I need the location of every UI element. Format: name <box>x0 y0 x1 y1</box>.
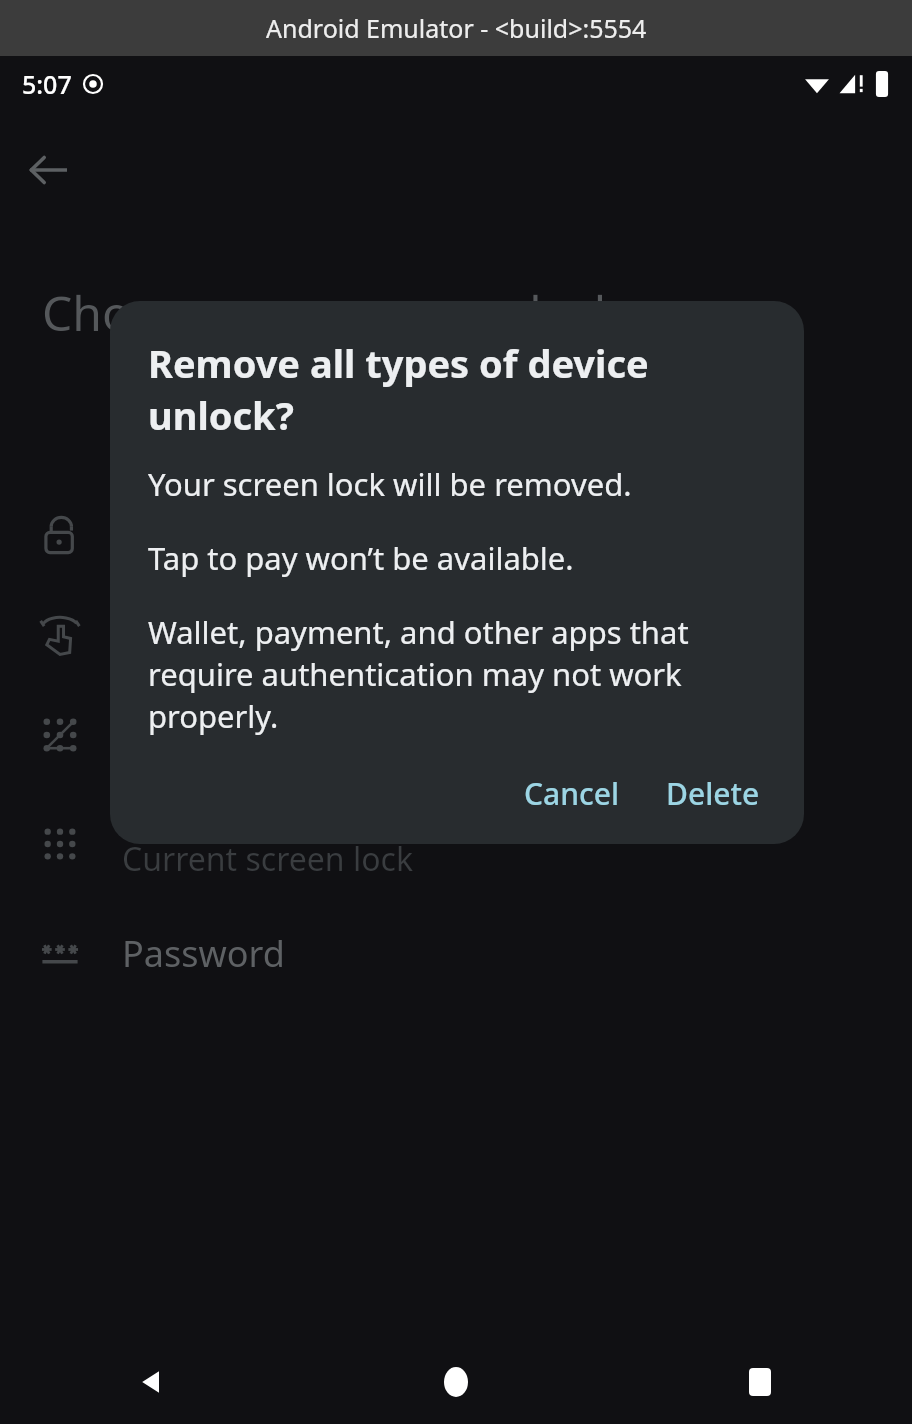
button[interactable]: Recent apps <box>608 1340 912 1424</box>
staticText: Choose a new screen lock <box>42 280 620 345</box>
button[interactable] <box>0 485 912 585</box>
staticText: Current screen lock <box>122 837 414 881</box>
button[interactable] <box>0 685 912 785</box>
button[interactable]: Password <box>0 903 912 1003</box>
staticText: Cancel <box>524 773 620 814</box>
staticText: Remove all types of device unlock? <box>148 337 774 441</box>
staticText: 5:07 <box>22 67 72 101</box>
staticText: Android Emulator - <build>:5554 <box>266 11 647 45</box>
button[interactable]: Home <box>304 1340 608 1424</box>
button[interactable]: Back <box>0 122 96 218</box>
button[interactable]: Delete <box>652 763 774 824</box>
staticText: Tap to pay won’t be available. <box>148 537 574 579</box>
button[interactable] <box>0 585 912 685</box>
button[interactable]: Current screen lock <box>0 785 912 903</box>
staticText: Password <box>122 929 285 978</box>
button[interactable]: Back <box>0 1340 304 1424</box>
staticText: Wallet, payment, and other apps that req… <box>148 611 774 737</box>
staticText: Your screen lock will be removed. <box>148 463 632 505</box>
button[interactable]: Cancel <box>510 763 634 824</box>
staticText: Delete <box>666 773 760 814</box>
